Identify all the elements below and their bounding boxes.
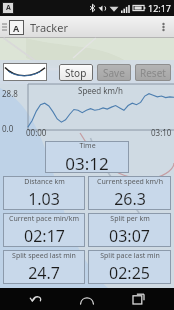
staticText: 12:17 bbox=[148, 2, 172, 14]
button[interactable]: Elevation profile bbox=[3, 63, 47, 81]
staticText: Current speed km/h bbox=[97, 177, 163, 187]
staticText: 28.8 bbox=[2, 88, 18, 99]
button[interactable]: Split pace last min bbox=[88, 250, 171, 284]
button[interactable]: Recents bbox=[123, 288, 153, 310]
staticText: 1.03 bbox=[28, 188, 60, 210]
staticText: Split pace last min bbox=[100, 251, 160, 261]
button[interactable]: Stop bbox=[59, 64, 93, 81]
staticText: A bbox=[13, 22, 20, 34]
staticText: 03:12 bbox=[65, 152, 109, 173]
button[interactable]: Current speed km/h bbox=[88, 176, 171, 210]
button[interactable]: Split per km bbox=[88, 213, 171, 247]
staticText: A bbox=[6, 3, 11, 13]
button[interactable]: Time bbox=[45, 141, 129, 173]
staticText: 24.7 bbox=[28, 262, 60, 284]
staticText: 0.0 bbox=[2, 123, 14, 134]
staticText: Stop bbox=[65, 66, 87, 80]
staticText: Split speed last min bbox=[12, 251, 76, 261]
staticText: 00:00 bbox=[26, 127, 47, 138]
staticText: Speed km/h bbox=[78, 85, 124, 96]
staticText: 02:25 bbox=[109, 262, 150, 284]
staticText: Distance km bbox=[24, 177, 65, 187]
staticText: 02:17 bbox=[24, 225, 65, 247]
staticText: Split per km bbox=[110, 214, 150, 224]
button[interactable]: Save bbox=[97, 64, 131, 81]
staticText: Time bbox=[79, 141, 96, 151]
button[interactable]: More options bbox=[156, 16, 170, 38]
staticText: Tracker bbox=[30, 20, 68, 35]
button[interactable]: Distance km bbox=[3, 176, 85, 210]
button[interactable]: Split speed last min bbox=[3, 250, 85, 284]
button[interactable]: Back bbox=[21, 288, 51, 310]
staticText: Reset bbox=[140, 66, 166, 80]
button[interactable]: Reset bbox=[135, 64, 171, 81]
staticText: 26.3 bbox=[114, 188, 146, 210]
staticText: 03:07 bbox=[109, 225, 150, 247]
staticText: 03:10 bbox=[151, 127, 172, 138]
button[interactable]: Current pace min/km bbox=[3, 213, 85, 247]
staticText: Current pace min/km bbox=[9, 214, 79, 224]
button[interactable]: Home bbox=[72, 288, 102, 310]
staticText: Save bbox=[103, 66, 125, 80]
